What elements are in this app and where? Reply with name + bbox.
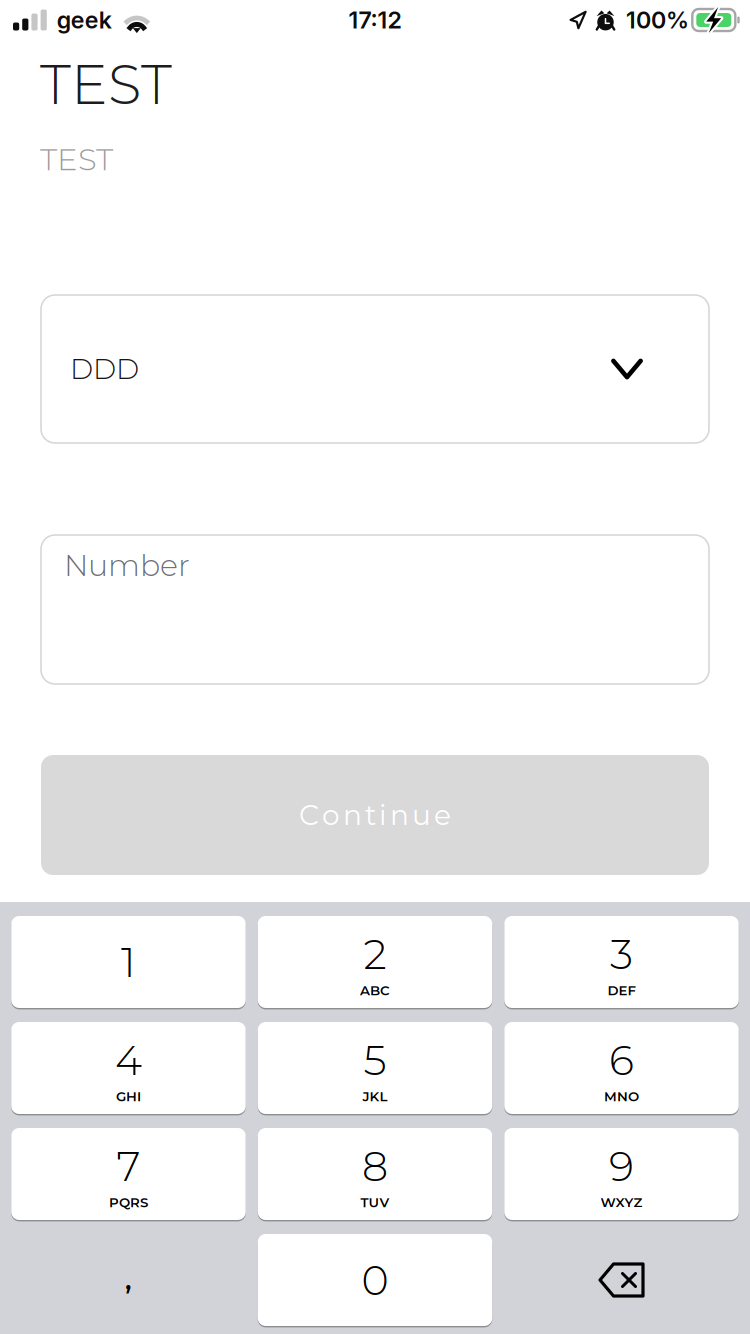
button[interactable]: 4 — [11, 1021, 246, 1115]
staticText: TEST — [40, 51, 172, 118]
staticText: GHI — [116, 1088, 141, 1105]
staticText: 8 — [362, 1141, 388, 1191]
staticText: C o n t i n u e — [299, 798, 451, 832]
staticText: DEF — [607, 982, 635, 999]
button[interactable]: Delete — [504, 1233, 739, 1327]
button[interactable]: Comma — [11, 1233, 246, 1327]
staticText: DDD — [70, 352, 139, 386]
staticText: 3 — [610, 929, 633, 979]
staticText: MNO — [604, 1088, 639, 1105]
staticText: PQRS — [109, 1194, 148, 1211]
staticText: 0 — [361, 1255, 388, 1305]
staticText: 17:12 — [348, 6, 401, 34]
staticText: 2 — [363, 929, 386, 979]
staticText: JKL — [362, 1088, 387, 1105]
staticText: 7 — [116, 1141, 140, 1191]
staticText: , — [125, 1264, 132, 1296]
staticText: 100% — [626, 6, 689, 34]
staticText: geek — [57, 6, 112, 34]
button[interactable]: 9 — [504, 1127, 739, 1221]
button[interactable]: 6 — [504, 1021, 739, 1115]
staticText: TEST — [40, 141, 113, 178]
button[interactable]: C o n t i n u e — [41, 755, 709, 875]
staticText: TUV — [360, 1194, 389, 1211]
button[interactable]: 5 — [258, 1021, 492, 1115]
button[interactable]: 1 — [11, 915, 246, 1009]
staticText: WXYZ — [600, 1194, 642, 1211]
button[interactable]: DDD — [41, 295, 709, 443]
staticText: 6 — [609, 1035, 634, 1085]
button[interactable]: 8 — [258, 1127, 492, 1221]
button[interactable]: Number — [41, 535, 709, 684]
staticText: ABC — [360, 982, 390, 999]
button[interactable]: 0 — [258, 1233, 492, 1327]
button[interactable]: 2 — [258, 915, 492, 1009]
staticText: Number — [64, 547, 190, 584]
button[interactable]: 3 — [504, 915, 739, 1009]
staticText: 4 — [115, 1035, 142, 1085]
staticText: 5 — [363, 1035, 386, 1085]
staticText: 1 — [121, 937, 136, 987]
staticText: 9 — [609, 1141, 634, 1191]
button[interactable]: 7 — [11, 1127, 246, 1221]
